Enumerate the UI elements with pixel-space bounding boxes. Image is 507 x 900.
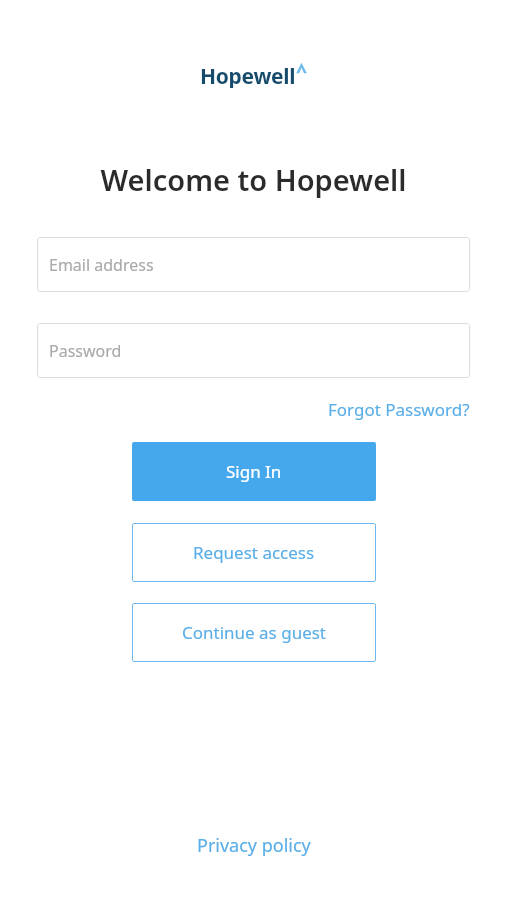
staticText: Request access <box>193 541 315 564</box>
button[interactable]: Privacy policy <box>197 833 311 858</box>
staticText: Email address <box>49 254 154 276</box>
staticText: Password <box>49 340 122 362</box>
button[interactable]: Sign In <box>132 442 376 501</box>
button[interactable]: Forgot Password? <box>328 398 470 421</box>
button[interactable]: Continue as guest <box>132 603 376 662</box>
button[interactable]: Email address <box>37 237 470 292</box>
staticText: Continue as guest <box>182 621 327 644</box>
button[interactable]: Password <box>37 323 470 378</box>
staticText: Welcome to Hopewell <box>100 160 407 199</box>
button[interactable]: Request access <box>132 523 376 582</box>
staticText: Hopewell <box>200 62 296 88</box>
staticText: Sign In <box>226 460 282 483</box>
staticText: Forgot Password? <box>328 398 470 421</box>
staticText: Privacy policy <box>197 833 311 858</box>
other: Hopewell logo <box>200 62 307 88</box>
